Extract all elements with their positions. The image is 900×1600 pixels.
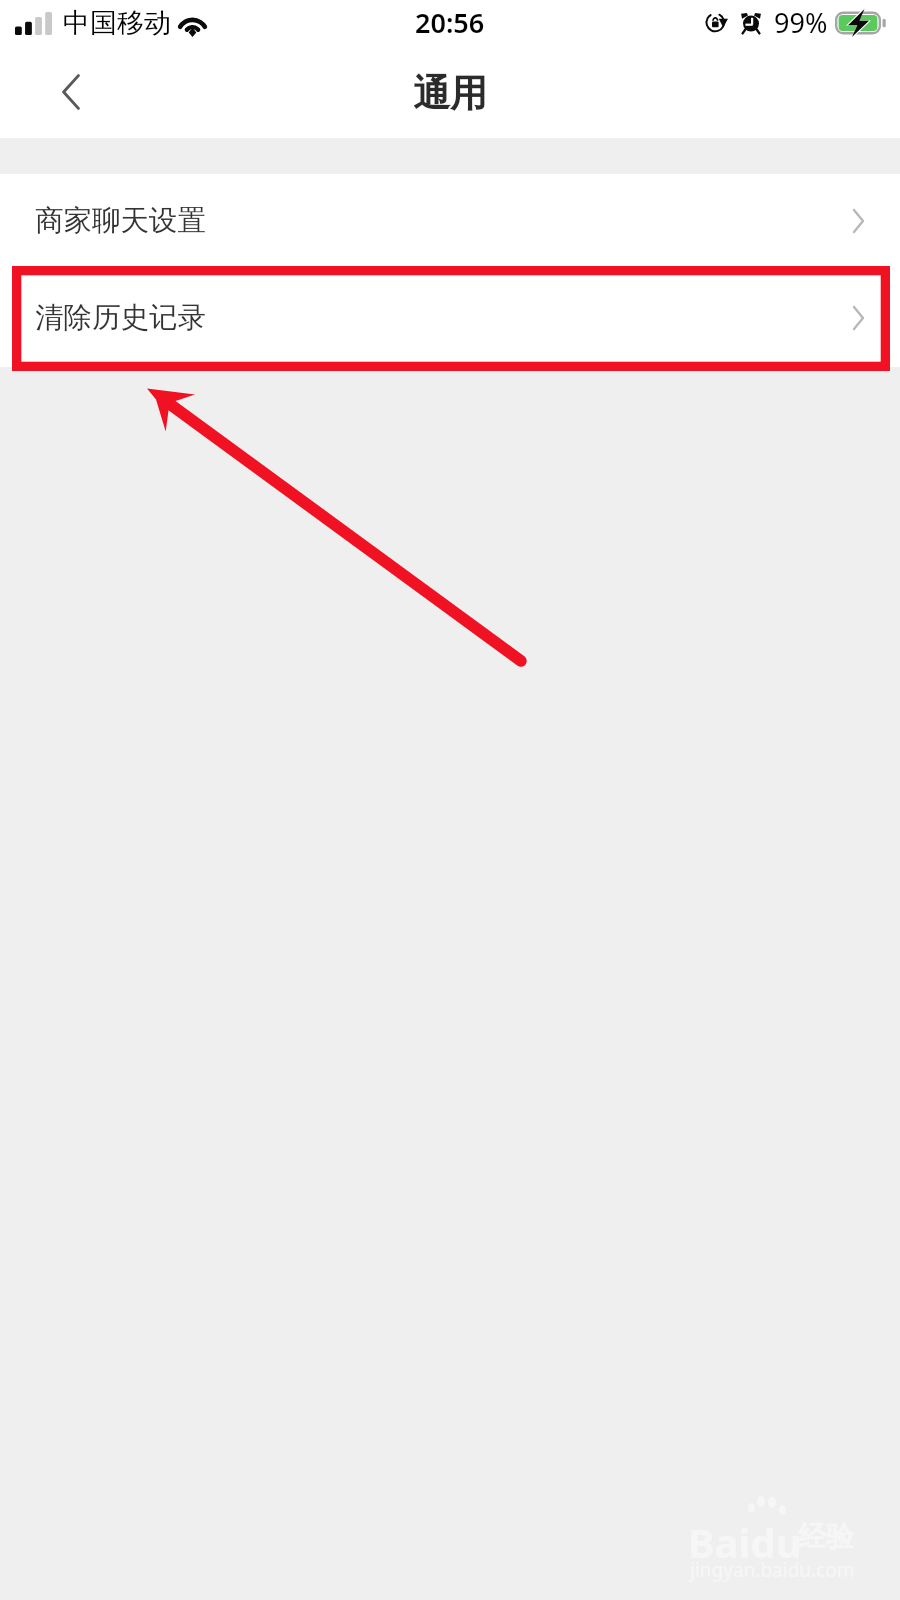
staticText: 清除历史记录 — [35, 300, 206, 336]
button[interactable]: 清除历史记录 — [0, 268, 900, 367]
staticText: 经验 — [798, 1519, 854, 1554]
staticText: 中国移动 — [63, 6, 171, 40]
staticText: Baidu — [688, 1515, 802, 1569]
staticText: 商家聊天设置 — [35, 203, 206, 239]
staticText: 99% — [774, 4, 828, 41]
button[interactable]: 返回 — [0, 45, 142, 138]
staticText: 通用 — [413, 70, 487, 117]
button[interactable]: 商家聊天设置 — [0, 174, 900, 268]
staticText: 20:56 — [415, 4, 485, 41]
